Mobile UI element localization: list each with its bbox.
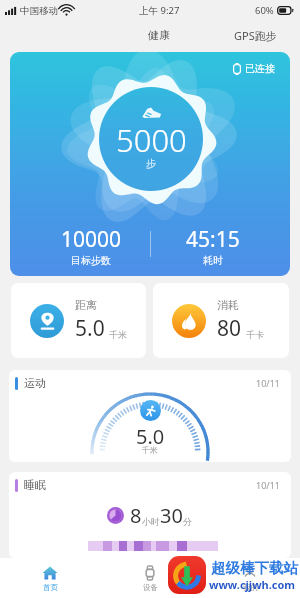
staticText: 健康 (148, 28, 170, 42)
staticText: 千米 (142, 445, 158, 455)
staticText: 8 (130, 502, 142, 529)
staticText: 30 (160, 502, 183, 529)
staticText: 45:15 (186, 225, 240, 254)
button[interactable]: 首页 (0, 558, 100, 598)
staticText: 5.0 (136, 423, 165, 450)
staticText: 设备 (143, 583, 158, 592)
staticText: 80 (217, 314, 242, 343)
button[interactable]: 距离 (11, 283, 146, 358)
staticText: 已连接 (245, 62, 275, 75)
staticText: 步 (146, 157, 156, 170)
staticText: GPS跑步 (234, 28, 277, 43)
button[interactable]: 健康 (140, 25, 178, 45)
staticText: 首页 (43, 583, 58, 592)
button[interactable]: 已连接 (10, 52, 290, 276)
button[interactable]: 设备 (100, 558, 200, 598)
staticText: 千卡 (246, 329, 264, 340)
staticText: 5000 (116, 119, 187, 161)
staticText: 我的 (243, 583, 258, 592)
staticText: 运动 (24, 376, 46, 390)
staticText: 60% (255, 4, 274, 17)
staticText: 目标步数 (71, 254, 111, 267)
staticText: 小时 (142, 516, 160, 527)
staticText: 10/11 (256, 479, 280, 491)
staticText: 消耗 (217, 298, 239, 312)
button[interactable]: 睡眠 (9, 472, 291, 558)
button[interactable]: 运动 (9, 370, 291, 462)
staticText: 中国移动 (20, 5, 58, 17)
staticText: 10/11 (256, 377, 280, 389)
staticText: 耗时 (203, 254, 223, 267)
staticText: 分 (183, 516, 192, 527)
staticText: 距离 (75, 298, 97, 312)
button[interactable]: GPS跑步 (226, 25, 285, 46)
staticText: 睡眠 (24, 478, 46, 492)
button[interactable]: 消耗 (153, 283, 289, 358)
staticText: 千米 (109, 329, 127, 340)
button[interactable]: 已连接 (231, 60, 277, 77)
staticText: 超级棒下载站 (211, 559, 298, 577)
button[interactable]: 我的 (200, 558, 300, 598)
staticText: 上午 9:27 (139, 4, 180, 17)
staticText: 10000 (61, 225, 122, 254)
staticText: www.cjjwh.com (209, 577, 296, 592)
staticText: 5.0 (75, 314, 105, 343)
